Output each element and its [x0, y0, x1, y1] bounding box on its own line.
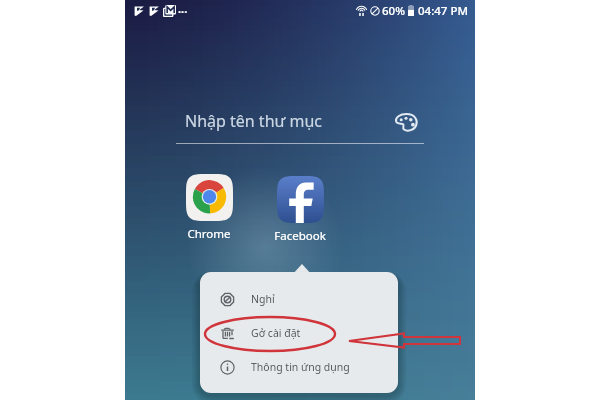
staticText: Thông tin ứng dụng	[251, 360, 350, 374]
button[interactable]: Nghỉ	[200, 282, 398, 316]
staticText: Nghỉ	[251, 292, 275, 306]
button[interactable]: Facebook	[259, 176, 341, 244]
staticText: 60%	[382, 3, 405, 19]
staticText: Facebook	[274, 228, 326, 244]
button[interactable]: Change folder colour	[389, 105, 423, 139]
button[interactable]: Thông tin ứng dụng	[200, 350, 398, 384]
button[interactable]: Chrome	[168, 174, 250, 242]
staticText: 04:47 PM	[418, 3, 469, 19]
staticText: ...	[178, 1, 188, 16]
staticText: Chrome	[187, 226, 231, 242]
button[interactable]: Gở cài đặt	[200, 316, 398, 350]
staticText: Gở cài đặt	[251, 326, 301, 340]
staticText: Nhập tên thư mục	[185, 110, 323, 132]
